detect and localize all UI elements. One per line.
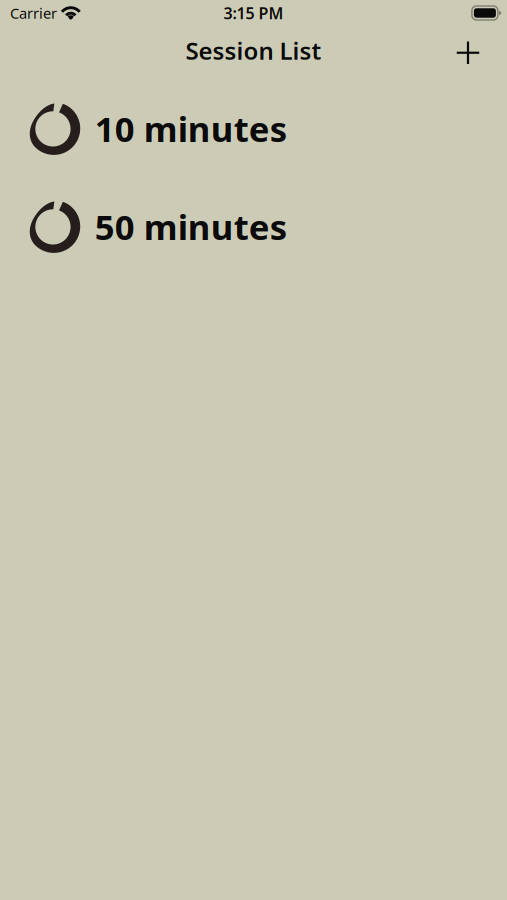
button[interactable]: 10 minutes [0,79,507,177]
staticText: 3:15 PM [223,2,283,24]
button[interactable]: Add session [446,31,490,75]
button[interactable]: 50 minutes [0,177,507,275]
staticText: Session List [185,35,321,66]
staticText: Carrier [10,3,57,23]
staticText: 50 minutes [95,203,287,249]
staticText: 10 minutes [95,105,287,151]
